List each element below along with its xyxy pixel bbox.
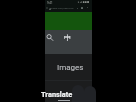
- staticText: Translate: [41, 90, 73, 99]
- staticText: 9:41: [47, 1, 53, 4]
- staticText: google.com/search?q: [50, 7, 74, 10]
- button[interactable]: Translate: [41, 90, 73, 99]
- staticText: Images: [57, 63, 84, 72]
- button[interactable]: [72, 85, 84, 102]
- button[interactable]: Language: [63, 33, 72, 42]
- staticText: 中: [64, 33, 71, 42]
- button[interactable]: Search: [45, 33, 54, 42]
- button[interactable]: [84, 86, 96, 102]
- button[interactable]: Tabs: [81, 7, 83, 9]
